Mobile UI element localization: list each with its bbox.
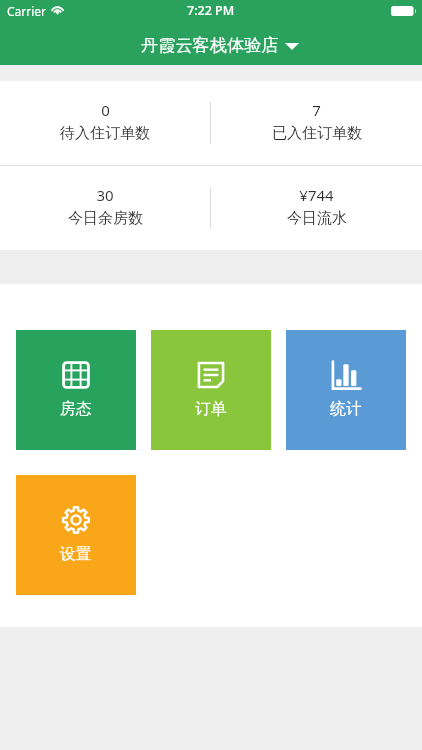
staticText: 待入住订单数 [60,124,150,143]
staticText: 订单 [195,399,227,419]
staticText: 已入住订单数 [272,124,362,143]
staticText: 今日余房数 [68,209,143,228]
staticText: 今日流水 [287,209,347,228]
staticText: 统计 [330,399,362,419]
other: Battery [391,6,416,16]
staticText: 7:22 PM [187,2,235,19]
staticText: 7 [312,100,321,120]
button[interactable]: 0 [0,81,210,165]
button[interactable]: 丹霞云客栈体验店 [141,35,299,57]
staticText: 设置 [60,544,92,564]
staticText: Carrier [7,3,47,19]
button[interactable]: 30 [0,166,210,250]
button[interactable]: 7 [211,81,422,165]
button[interactable]: 房态 [16,330,136,450]
staticText: 房态 [60,399,92,419]
button[interactable]: 设置 [16,475,136,595]
staticText: ¥744 [299,185,334,205]
button[interactable]: 统计 [286,330,406,450]
button[interactable]: ¥744 [211,166,422,250]
staticText: 0 [101,100,110,120]
button[interactable]: 订单 [151,330,271,450]
staticText: 30 [96,185,114,205]
staticText: 丹霞云客栈体验店 [141,34,279,56]
